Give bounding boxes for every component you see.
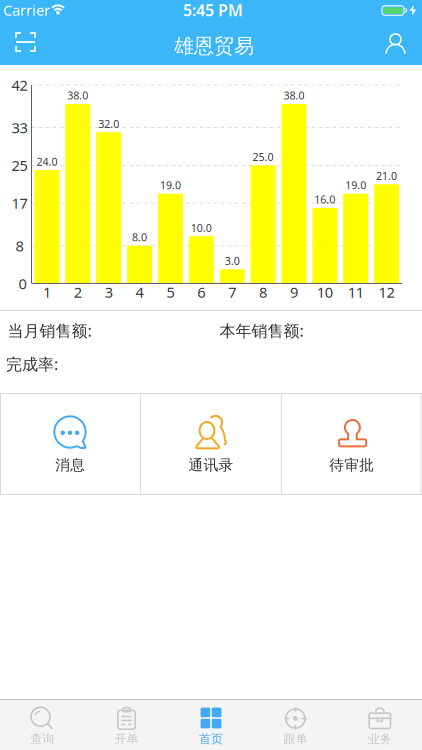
- staticText: 17: [11, 193, 27, 213]
- staticText: 19.0: [160, 178, 181, 192]
- staticText: 0: [18, 274, 26, 293]
- staticText: 当月销售额:: [7, 320, 91, 341]
- staticText: 42: [11, 75, 27, 95]
- staticText: 2: [74, 282, 82, 302]
- staticText: 8: [15, 236, 23, 255]
- staticText: 5: [166, 282, 174, 302]
- staticText: 25.0: [253, 150, 274, 164]
- staticText: 跟单: [283, 732, 307, 746]
- staticText: 首页: [199, 732, 223, 746]
- staticText: 本年销售额:: [219, 320, 303, 341]
- staticText: 4: [136, 282, 144, 302]
- staticText: Carrier: [3, 0, 50, 20]
- staticText: 5:45 PM: [183, 0, 243, 21]
- staticText: 21.0: [376, 169, 397, 183]
- staticText: 7: [228, 282, 236, 302]
- staticText: 9: [290, 282, 298, 302]
- staticText: 开单: [115, 732, 139, 746]
- staticText: 雄恩贸易: [174, 34, 254, 58]
- staticText: 16.0: [314, 192, 335, 206]
- staticText: 1: [43, 282, 51, 302]
- staticText: 12: [379, 282, 395, 302]
- staticText: 8.0: [132, 230, 147, 244]
- staticText: 待审批: [329, 456, 374, 474]
- staticText: 38.0: [67, 88, 88, 102]
- staticText: 3: [105, 282, 113, 302]
- staticText: 通讯录: [188, 456, 233, 474]
- staticText: 24.0: [36, 154, 57, 169]
- staticText: 消息: [55, 456, 85, 474]
- staticText: 6: [197, 282, 205, 302]
- staticText: 25: [11, 156, 27, 175]
- staticText: 8: [259, 282, 267, 302]
- staticText: 32.0: [98, 117, 119, 131]
- staticText: 38.0: [283, 88, 304, 102]
- staticText: 11: [348, 282, 364, 302]
- staticText: 19.0: [345, 178, 366, 192]
- staticText: 10: [317, 282, 333, 302]
- staticText: 3.0: [225, 254, 240, 268]
- staticText: 33: [11, 118, 27, 137]
- staticText: 完成率:: [6, 353, 58, 375]
- staticText: 查询: [30, 732, 54, 746]
- staticText: 10.0: [191, 221, 212, 235]
- staticText: 业务: [368, 732, 392, 746]
